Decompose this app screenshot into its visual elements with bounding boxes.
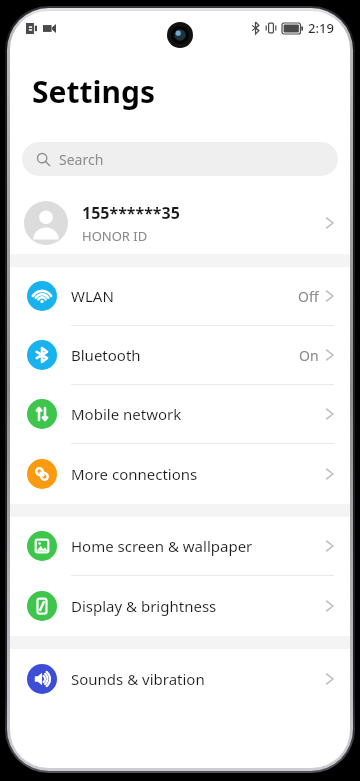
staticText: 2:19 [308,19,334,37]
staticText: Off [298,287,319,306]
staticText: Search [59,150,104,169]
staticText: Display & brightness [71,596,325,616]
staticText: On [299,346,319,365]
button[interactable]: Bluetooth [10,326,350,384]
staticText: WLAN [71,286,298,306]
button[interactable]: Home screen & wallpaper [10,517,350,575]
button[interactable]: 155******35 [10,192,350,254]
staticText: More connections [71,464,325,484]
staticText: HONOR ID [82,227,148,245]
staticText: 155******35 [82,202,180,224]
staticText: Settings [32,71,155,112]
button[interactable]: Sounds & vibration [10,649,350,709]
staticText: Bluetooth [71,345,299,365]
button[interactable]: Mobile network [10,385,350,443]
staticText: Sounds & vibration [71,669,325,689]
button[interactable]: Display & brightness [10,576,350,636]
button[interactable]: WLAN [10,267,350,325]
staticText: Home screen & wallpaper [71,536,325,556]
button[interactable]: More connections [10,444,350,504]
staticText: Mobile network [71,404,325,424]
button[interactable]: Search [22,142,338,176]
